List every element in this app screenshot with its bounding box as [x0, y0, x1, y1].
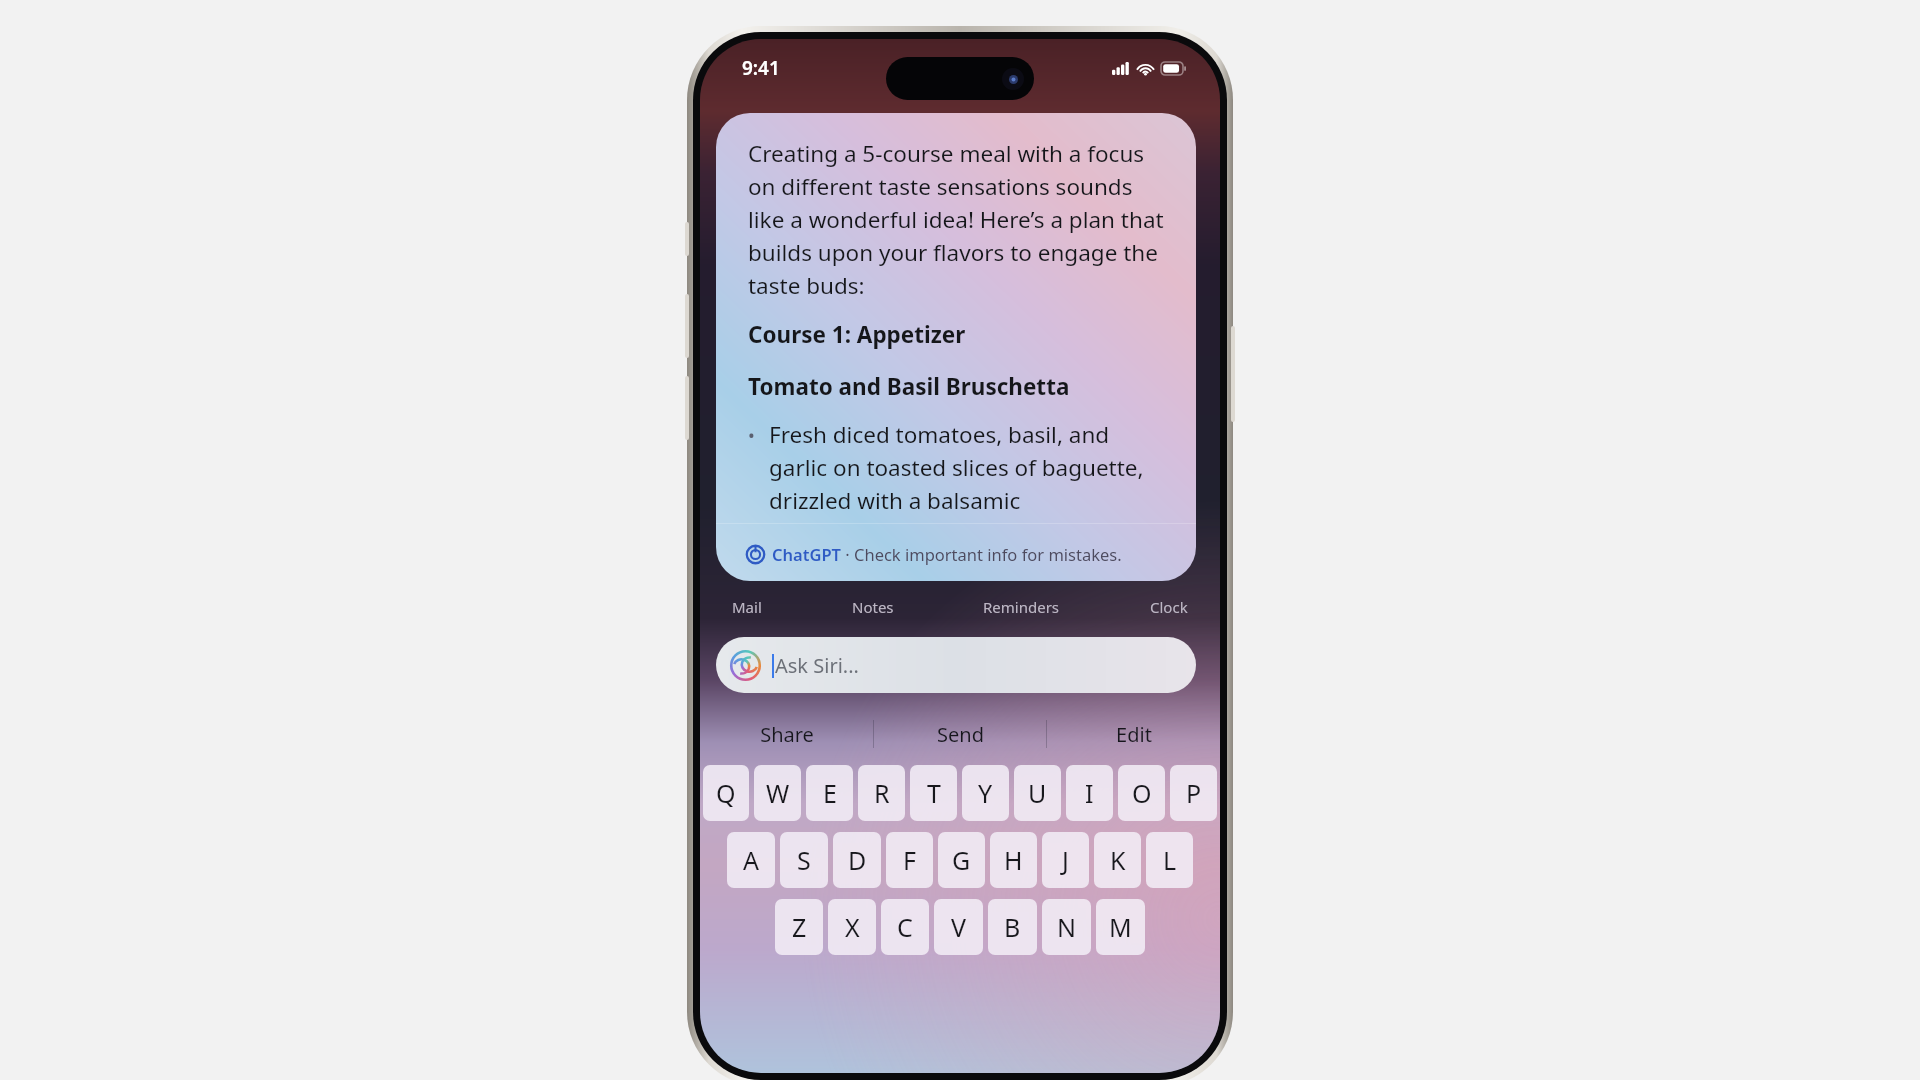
staticText: R	[874, 776, 890, 810]
button[interactable]: Reminders	[973, 591, 1070, 623]
staticText: C	[897, 910, 913, 944]
staticText: I	[1085, 776, 1094, 810]
button[interactable]: K	[1094, 832, 1141, 888]
staticText: Creating a 5-course meal with a focus on…	[748, 138, 1170, 300]
staticText: W	[766, 776, 790, 810]
staticText: 9:41	[742, 55, 780, 81]
staticText: A	[743, 843, 759, 877]
button[interactable]: M	[1096, 899, 1145, 955]
staticText: M	[1109, 910, 1132, 944]
button[interactable]: J	[1042, 832, 1089, 888]
staticText: Q	[716, 776, 736, 810]
staticText: Fresh diced tomatoes, basil, and garlic …	[769, 419, 1170, 515]
button[interactable]: E	[806, 765, 853, 821]
button[interactable]: R	[858, 765, 905, 821]
staticText: · Check important info for mistakes.	[841, 543, 1122, 565]
staticText: Reminders	[983, 597, 1060, 617]
staticText: G	[952, 843, 971, 877]
button[interactable]: N	[1042, 899, 1091, 955]
staticText: K	[1110, 843, 1126, 877]
button[interactable]: F	[886, 832, 933, 888]
staticText: S	[797, 843, 811, 877]
button[interactable]: P	[1170, 765, 1217, 821]
staticText: Tomato and Basil Bruschetta	[748, 371, 1070, 402]
staticText: Mail	[732, 597, 762, 617]
button[interactable]: Ask Siri...	[716, 637, 1196, 693]
button[interactable]: Share	[700, 707, 874, 761]
button[interactable]: D	[833, 832, 881, 888]
button[interactable]: W	[754, 765, 801, 821]
staticText: T	[927, 776, 941, 810]
button[interactable]: C	[881, 899, 929, 955]
staticText: O	[1132, 776, 1152, 810]
staticText: Clock	[1150, 597, 1188, 617]
staticText: Edit	[1116, 721, 1152, 748]
staticText: Y	[978, 776, 993, 810]
staticText: Course 1: Appetizer	[748, 319, 966, 350]
button[interactable]: Y	[962, 765, 1009, 821]
staticText: ChatGPT	[772, 543, 841, 565]
button[interactable]: O	[1118, 765, 1165, 821]
button[interactable]: Q	[703, 765, 749, 821]
staticText: J	[1062, 843, 1069, 877]
button[interactable]: Creating a 5-course meal with a focus on…	[716, 113, 1196, 581]
button[interactable]: T	[910, 765, 957, 821]
staticText: L	[1163, 843, 1177, 877]
button[interactable]: Clock	[1140, 591, 1198, 623]
button[interactable]: I	[1066, 765, 1113, 821]
button[interactable]: B	[988, 899, 1037, 955]
staticText: P	[1186, 776, 1202, 810]
staticText: N	[1057, 910, 1077, 944]
button[interactable]: X	[828, 899, 876, 955]
button[interactable]: Edit	[1047, 707, 1220, 761]
button[interactable]: Z	[775, 899, 823, 955]
button[interactable]: L	[1146, 832, 1193, 888]
staticText: Notes	[852, 597, 894, 617]
staticText: B	[1004, 910, 1021, 944]
staticText: Ask Siri...	[775, 652, 859, 679]
button[interactable]: Send	[874, 707, 1047, 761]
staticText: X	[845, 910, 860, 944]
button[interactable]: V	[934, 899, 983, 955]
staticText: D	[848, 843, 867, 877]
staticText: U	[1028, 776, 1047, 810]
staticText: Z	[792, 910, 807, 944]
staticText: E	[823, 776, 837, 810]
staticText: •	[748, 423, 755, 448]
button[interactable]: A	[727, 832, 775, 888]
button[interactable]: Notes	[842, 591, 904, 623]
staticText: F	[903, 843, 916, 877]
button[interactable]: G	[938, 832, 985, 888]
staticText: Send	[937, 721, 984, 748]
button[interactable]: Mail	[722, 591, 772, 623]
button[interactable]: U	[1014, 765, 1061, 821]
button[interactable]: S	[780, 832, 828, 888]
staticText: V	[951, 910, 967, 944]
button[interactable]: H	[990, 832, 1037, 888]
staticText: Share	[760, 721, 814, 748]
staticText: H	[1004, 843, 1023, 877]
